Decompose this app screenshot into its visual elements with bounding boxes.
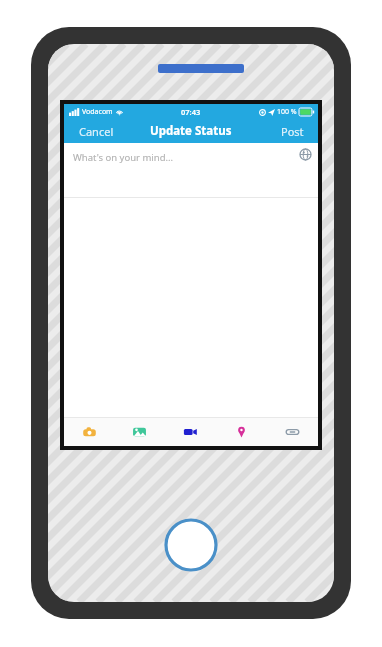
button[interactable]: Photo <box>114 418 165 446</box>
staticText: 100 % <box>277 107 297 117</box>
staticText: Cancel <box>79 124 114 139</box>
button[interactable]: Cancel <box>64 119 128 143</box>
button[interactable]: Post <box>267 119 318 143</box>
button[interactable]: Location <box>216 418 267 446</box>
button[interactable]: Home <box>164 518 218 572</box>
button[interactable]: Camera <box>64 418 114 446</box>
button[interactable]: What's on your mind... <box>64 143 318 197</box>
staticText: What's on your mind... <box>73 151 174 164</box>
button[interactable]: Video <box>165 418 216 446</box>
button[interactable]: Link <box>267 418 318 446</box>
button[interactable]: Audience: Public <box>299 148 312 161</box>
staticText: Post <box>281 124 304 139</box>
staticText: 07:43 <box>181 107 201 117</box>
staticText: Update Status <box>150 123 232 139</box>
staticText: Vodacom <box>82 107 113 117</box>
